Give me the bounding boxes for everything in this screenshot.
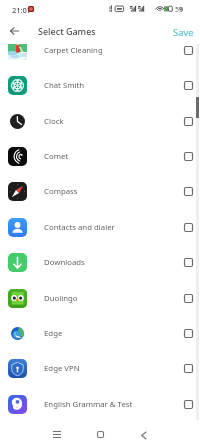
staticText: Duolingo [44,293,78,304]
staticText: Clock [44,116,64,127]
staticText: Downloads [44,257,85,268]
button[interactable]: Home [88,422,112,446]
button[interactable]: Clock [0,104,200,139]
staticText: Edge [44,328,63,339]
staticText: % [179,6,184,13]
button[interactable]: Contacts and dialer [0,210,200,245]
staticText: Compass [44,186,78,197]
button[interactable]: Comet [0,139,200,174]
button[interactable]: Chat Smith [0,68,200,103]
button[interactable]: Recent apps [45,422,69,446]
staticText: Carpet Cleaning [44,45,103,56]
button[interactable]: Save [165,20,200,43]
button[interactable]: Back [131,423,155,446]
button[interactable]: Back [2,19,26,43]
button[interactable]: Compass [0,174,200,209]
staticText: Contacts and dialer [44,222,115,233]
staticText: Edge VPN [44,363,80,374]
staticText: Comet [44,151,69,162]
staticText: Select Games [38,25,96,37]
staticText: English Grammar & Test [44,399,133,410]
staticText: 21:07 [12,5,32,15]
button[interactable]: English Grammar & Test [0,387,200,420]
button[interactable]: Duolingo [0,281,200,316]
staticText: 59 [175,5,184,15]
button[interactable]: Edge VPN [0,351,200,386]
button[interactable]: Downloads [0,245,200,280]
button[interactable]: Carpet Cleaning [0,44,200,68]
button[interactable]: Edge [0,316,200,351]
staticText: Save [173,26,194,39]
staticText: Chat Smith [44,80,85,91]
